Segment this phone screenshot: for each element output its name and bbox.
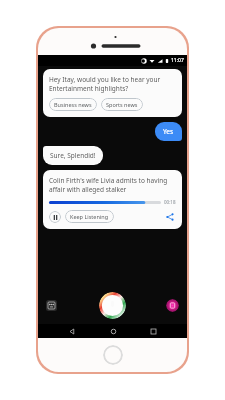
staticText: Colin Firth's wife Livia admits to havin… [49, 176, 176, 194]
button[interactable]: Voice input [99, 292, 126, 319]
staticText: Sports news [106, 101, 138, 108]
button[interactable]: Recents [146, 324, 160, 338]
button[interactable]: Pause [49, 211, 61, 223]
button[interactable]: Back [65, 324, 79, 338]
button[interactable]: Home button [103, 345, 123, 365]
staticText: Yes [163, 127, 174, 136]
staticText: 00:18 [164, 199, 176, 205]
button[interactable]: Sure, Splendid! [43, 146, 103, 165]
button[interactable]: Hey Itay, would you like to hear your En… [43, 69, 182, 117]
staticText: Business news [54, 101, 92, 108]
button[interactable]: Keep Listening [65, 210, 114, 223]
button[interactable]: Business news [49, 98, 97, 111]
staticText: 11:07 [171, 57, 184, 64]
button[interactable]: Home [106, 324, 120, 338]
button[interactable]: Yes [155, 122, 182, 141]
staticText: Keep Listening [70, 213, 109, 220]
staticText: Hey Itay, would you like to hear your En… [49, 75, 176, 93]
button[interactable]: Share [164, 211, 176, 223]
button[interactable]: Sports news [101, 98, 143, 111]
button[interactable]: Colin Firth's wife Livia admits to havin… [43, 170, 182, 229]
button[interactable]: Explore [166, 299, 179, 312]
button[interactable]: Keyboard [46, 300, 57, 311]
staticText: Sure, Splendid! [50, 151, 96, 160]
